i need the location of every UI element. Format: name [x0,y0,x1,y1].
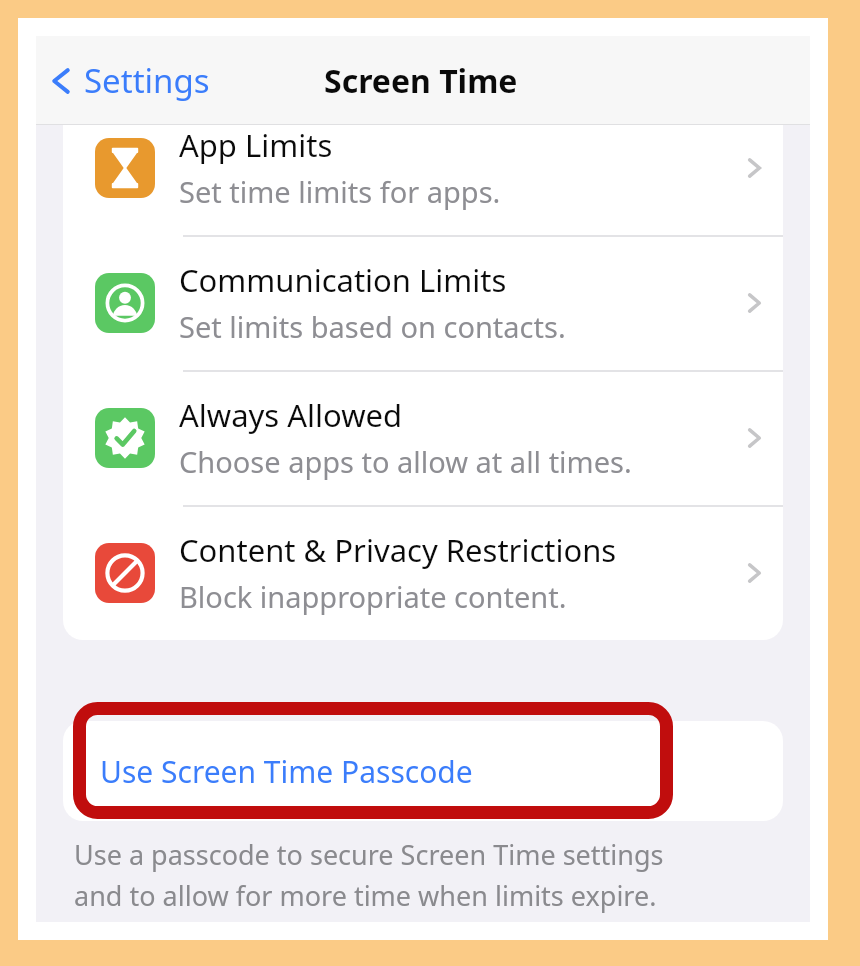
staticText: Screen Time [324,59,518,103]
staticText: Settings [84,58,210,103]
button[interactable]: Content & Privacy Restrictions [63,505,783,640]
button[interactable]: Use Screen Time Passcode [63,721,783,821]
staticText: Use a passcode to secure Screen Time set… [74,836,664,873]
staticText: Use Screen Time Passcode [100,751,473,792]
staticText: Communication Limits [179,259,507,301]
other: Back [44,64,78,98]
button[interactable]: Always Allowed [63,370,783,505]
staticText: Set time limits for apps. [179,172,501,211]
button[interactable]: App Limits [63,100,783,235]
button[interactable]: Communication Limits [63,235,783,370]
staticText: and to allow for more time when limits e… [74,877,657,914]
staticText: App Limits [179,124,333,166]
button[interactable]: Back [44,58,210,103]
staticText: Block inappropriate content. [179,577,567,616]
staticText: Content & Privacy Restrictions [179,529,617,571]
staticText: Always Allowed [179,394,403,436]
staticText: Choose apps to allow at all times. [179,442,632,481]
staticText: Set limits based on contacts. [179,307,566,346]
